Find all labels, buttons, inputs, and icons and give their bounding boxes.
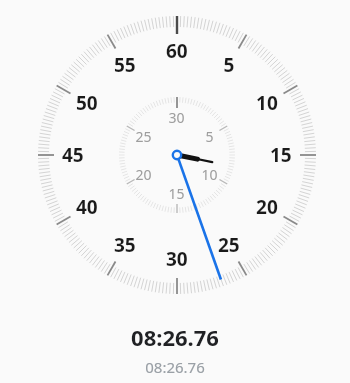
button[interactable]: 08:26.76: [131, 322, 219, 352]
button[interactable]: Stopwatch dial: [0, 0, 350, 383]
button[interactable]: 08:26.76: [145, 357, 205, 377]
